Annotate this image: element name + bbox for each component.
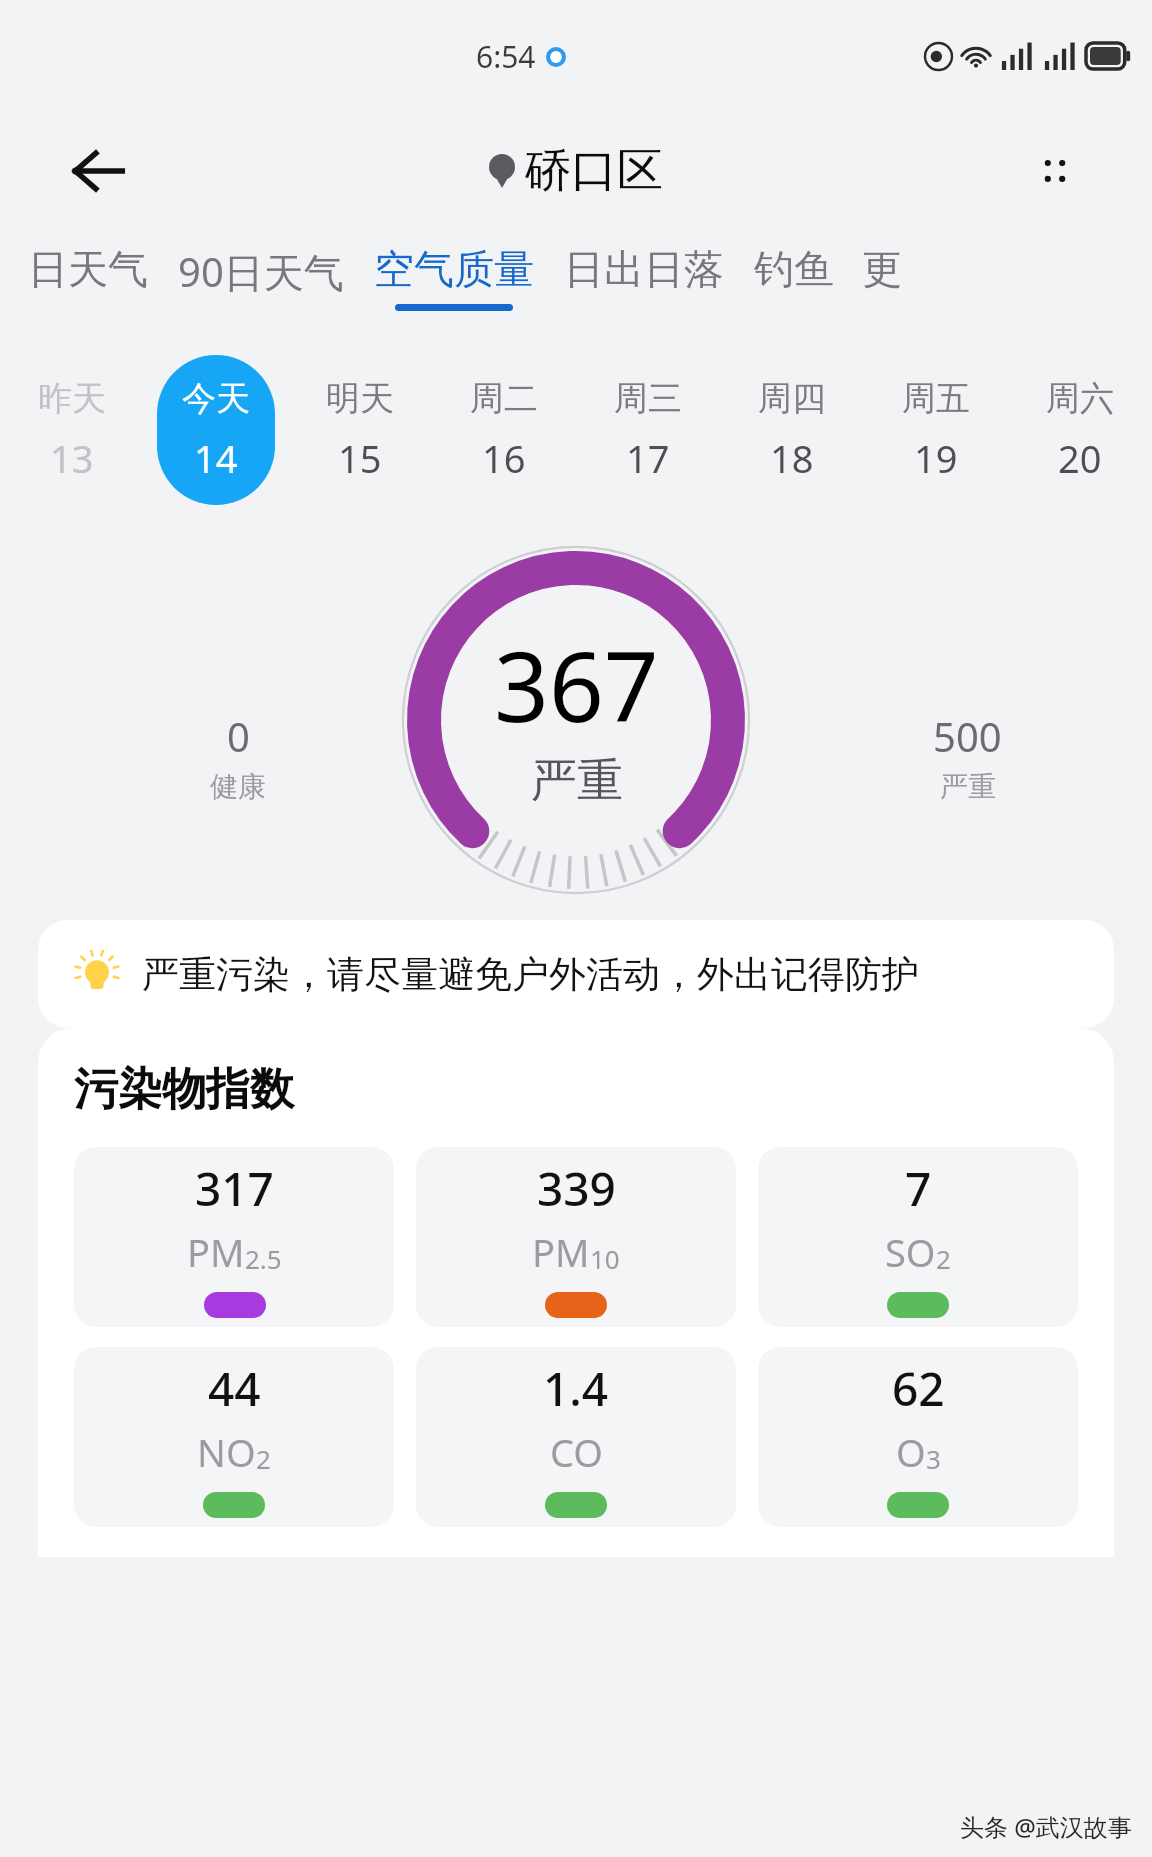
button[interactable]: 周五 <box>864 340 1008 520</box>
staticText: 500 <box>933 709 1002 763</box>
button[interactable]: 339 <box>416 1147 736 1327</box>
staticText: 13 <box>50 432 94 484</box>
button[interactable]: Back <box>62 135 134 207</box>
staticText: 17 <box>626 432 670 484</box>
staticText: 19 <box>914 432 958 484</box>
staticText: 硚口区 <box>525 142 663 200</box>
staticText: 周六 <box>1046 377 1114 420</box>
staticText: 18 <box>770 432 814 484</box>
button[interactable]: 明天 <box>288 340 432 520</box>
button[interactable]: 钓鱼 <box>754 244 834 304</box>
staticText: CO <box>550 1426 603 1478</box>
staticText: 健康 <box>210 769 266 804</box>
staticText: PM <box>187 1226 245 1278</box>
staticText: 明天 <box>326 377 394 420</box>
staticText: 3 <box>926 1441 941 1476</box>
staticText: 44 <box>208 1357 261 1420</box>
button[interactable]: 昨天 <box>0 340 144 520</box>
staticText: 15 <box>338 432 382 484</box>
button[interactable]: 日出日落 <box>564 244 724 304</box>
staticText: 2.5 <box>245 1241 282 1276</box>
button[interactable]: 317 <box>74 1147 394 1327</box>
staticText: 6:54 <box>476 36 536 77</box>
button[interactable]: 周二 <box>432 340 576 520</box>
staticText: 14 <box>194 432 238 484</box>
button[interactable]: 1.4 <box>416 1347 736 1527</box>
button[interactable]: 周三 <box>576 340 720 520</box>
button[interactable]: 日天气 <box>28 244 148 304</box>
staticText: 1.4 <box>543 1357 609 1420</box>
staticText: 日天气 <box>28 244 148 294</box>
staticText: 367 <box>494 619 659 750</box>
staticText: 16 <box>482 432 526 484</box>
staticText: 周三 <box>614 377 682 420</box>
staticText: 昨天 <box>38 377 106 420</box>
staticText: 空气质量 <box>374 244 534 294</box>
staticText: 317 <box>195 1157 274 1220</box>
staticText: 339 <box>537 1157 616 1220</box>
staticText: 2 <box>936 1241 951 1276</box>
button[interactable]: 周六 <box>1008 340 1152 520</box>
staticText: 更 <box>862 244 902 294</box>
staticText: 周二 <box>470 377 538 420</box>
button[interactable]: 周四 <box>720 340 864 520</box>
staticText: SO <box>885 1226 936 1278</box>
staticText: 严重 <box>531 752 623 810</box>
staticText: 污染物指数 <box>74 1062 294 1117</box>
staticText: 20 <box>1058 432 1102 484</box>
staticText: O <box>896 1426 926 1478</box>
staticText: 2 <box>256 1441 271 1476</box>
staticText: 7 <box>905 1157 932 1220</box>
staticText: 严重 <box>940 769 996 804</box>
staticText: 62 <box>892 1357 945 1420</box>
staticText: 日出日落 <box>564 244 724 294</box>
staticText: 严重污染，请尽量避免户外活动，外出记得防护 <box>142 951 919 998</box>
staticText: 头条 @武汉故事 <box>960 1810 1132 1843</box>
staticText: 钓鱼 <box>754 244 834 294</box>
staticText: 今天 <box>182 377 250 420</box>
button[interactable]: 44 <box>74 1347 394 1527</box>
staticText: PM <box>532 1226 590 1278</box>
button[interactable]: 更 <box>862 244 902 304</box>
button[interactable]: 90日天气 <box>178 244 344 309</box>
staticText: 周四 <box>758 377 826 420</box>
staticText: 周五 <box>902 377 970 420</box>
button[interactable]: More options <box>1020 136 1090 206</box>
button[interactable]: 今天 <box>144 340 288 520</box>
staticText: NO <box>197 1426 256 1478</box>
staticText: 0 <box>227 709 250 763</box>
button[interactable]: 空气质量 <box>374 244 534 311</box>
button[interactable]: 严重污染，请尽量避免户外活动，外出记得防护 <box>38 920 1114 1028</box>
staticText: 10 <box>590 1241 620 1276</box>
button[interactable]: 7 <box>758 1147 1078 1327</box>
button[interactable]: 62 <box>758 1347 1078 1527</box>
staticText: 90日天气 <box>178 244 344 299</box>
